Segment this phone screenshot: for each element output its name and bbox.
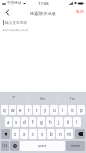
staticText: n (59, 131, 62, 137)
button[interactable]: "I" (0, 92, 28, 104)
staticText: "I" (12, 96, 16, 100)
staticText: 中国移动 (7, 1, 22, 6)
staticText: f (32, 119, 34, 125)
staticText: j (58, 119, 60, 125)
staticText: a (7, 119, 10, 125)
button[interactable]: c (29, 129, 37, 139)
staticText: i (62, 107, 64, 113)
staticText: w (11, 107, 15, 113)
button[interactable]: u (50, 105, 58, 115)
staticText: I'm (70, 96, 75, 101)
staticText: 123 (2, 144, 8, 148)
staticText: g (40, 119, 43, 125)
staticText: s (15, 119, 18, 125)
button[interactable]: Backspace (75, 129, 85, 139)
button[interactable]: g (37, 117, 45, 127)
button[interactable]: w (9, 105, 16, 115)
button[interactable]: t (33, 105, 40, 115)
staticText: return (71, 144, 80, 148)
staticText: 这些字不是从键盘上输入的 (2, 29, 29, 32)
button[interactable]: space (20, 141, 65, 151)
staticText: z (14, 131, 17, 137)
button[interactable]: Emoji keyboard (10, 141, 19, 151)
button[interactable]: 取消 (74, 7, 86, 18)
staticText: v (41, 131, 44, 137)
staticText: d (23, 119, 26, 125)
staticText: k (67, 119, 70, 125)
button[interactable]: n (56, 129, 64, 139)
button[interactable]: I'm (58, 92, 86, 104)
staticText: h (49, 119, 52, 125)
staticText: r (28, 107, 30, 113)
staticText: m (67, 131, 72, 137)
button[interactable]: q (1, 105, 8, 115)
staticText: u (53, 107, 56, 113)
staticText: 取消 (76, 9, 84, 14)
staticText: b (50, 131, 53, 137)
button[interactable]: Back (0, 7, 14, 18)
button[interactable]: return (66, 141, 85, 151)
button[interactable]: d (21, 117, 28, 127)
button[interactable]: j (55, 117, 63, 127)
staticText: the (40, 96, 46, 101)
button[interactable]: s (13, 117, 20, 127)
button[interactable]: h (46, 117, 54, 127)
button[interactable]: i (59, 105, 67, 115)
button[interactable]: l (73, 117, 81, 127)
button[interactable]: p (77, 105, 85, 115)
button[interactable]: m (65, 129, 73, 139)
staticText: space (38, 144, 47, 148)
staticText: o (71, 107, 74, 113)
button[interactable]: 123 (1, 141, 9, 151)
button[interactable]: Shift (1, 129, 10, 139)
staticText: c (32, 131, 35, 137)
staticText: e (19, 107, 22, 113)
button[interactable]: k (64, 117, 72, 127)
button[interactable]: b (47, 129, 55, 139)
staticText: l (76, 119, 78, 125)
button[interactable]: the (29, 92, 57, 104)
button[interactable]: o (68, 105, 76, 115)
button[interactable]: y (41, 105, 49, 115)
staticText: x (23, 131, 26, 137)
staticText: p (80, 107, 83, 113)
staticText: 17:08 (38, 1, 49, 7)
staticText: q (3, 107, 6, 113)
button[interactable]: r (25, 105, 32, 115)
button[interactable]: x (20, 129, 28, 139)
staticText: y (44, 107, 47, 113)
button[interactable]: a (5, 117, 12, 127)
button[interactable]: e (17, 105, 24, 115)
staticText: 搜索聊天记录 (30, 11, 56, 16)
staticText: 输入文字内容 (5, 20, 28, 25)
button[interactable]: z (12, 129, 19, 139)
button[interactable]: f (29, 117, 36, 127)
button[interactable]: v (38, 129, 46, 139)
staticText: t (36, 107, 38, 113)
